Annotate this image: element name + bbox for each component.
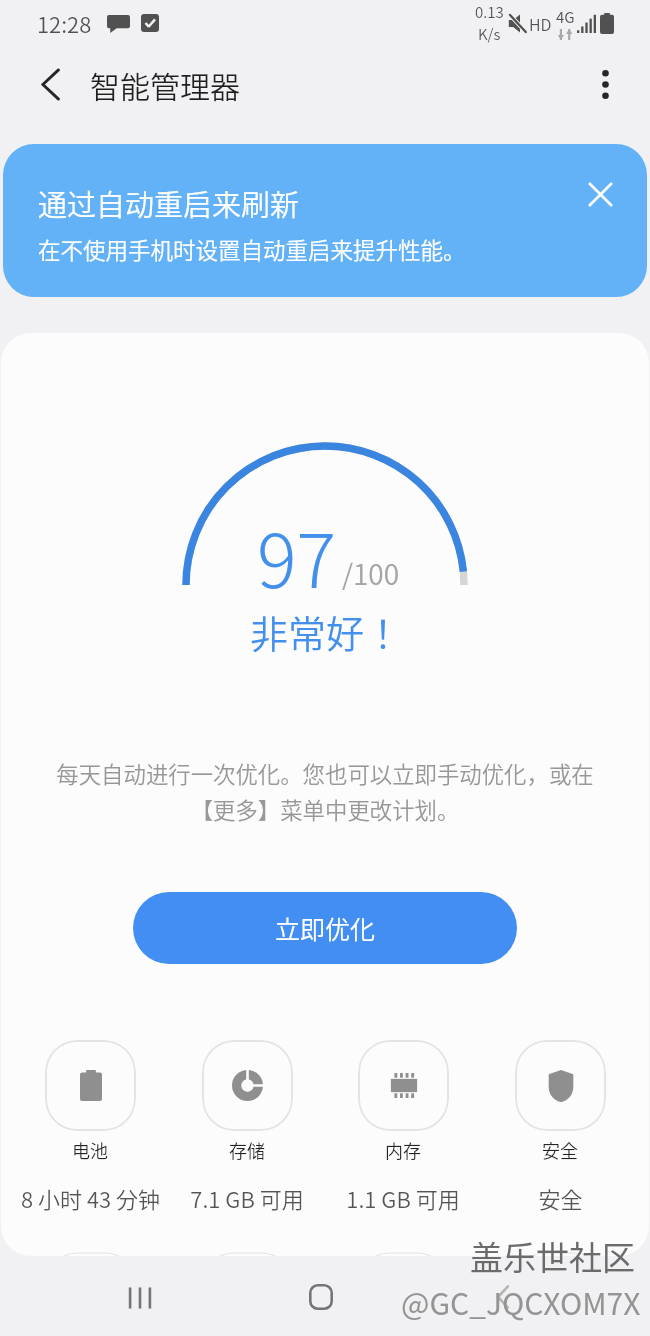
staticText: 4G [556, 6, 575, 28]
staticText: 每天自动进行一次优化。您也可以立即手动优化，或在 【更多】菜单中更改计划。 [41, 757, 609, 825]
staticText: @GC_JQCXOM7X [401, 1280, 641, 1323]
staticText: K/s [478, 23, 501, 45]
staticText: 安全 [538, 1182, 583, 1214]
staticText: /100 [342, 553, 400, 594]
staticText: 8 小时 43 分钟 [21, 1182, 160, 1214]
staticText: 安全 [542, 1137, 578, 1163]
staticText: 1.1 GB 可用 [346, 1182, 460, 1214]
button[interactable]: 立即优化 [133, 892, 517, 964]
staticText: 智能管理器 [90, 63, 240, 106]
button[interactable]: 安全 [482, 1040, 638, 1214]
staticText: 在不使用手机时设置自动重启来提升性能。 [38, 233, 466, 266]
staticText: 内存 [385, 1137, 421, 1163]
staticText: 盖乐世社区 [470, 1232, 635, 1280]
button[interactable]: Back [471, 1265, 535, 1329]
button[interactable]: 内存 [325, 1040, 481, 1214]
button[interactable]: Home [289, 1265, 353, 1329]
button[interactable]: Recents [108, 1266, 172, 1330]
button[interactable]: 存储 [169, 1040, 325, 1214]
button[interactable]: Close [580, 174, 620, 214]
staticText: 电池 [72, 1137, 108, 1163]
staticText: 0.13 [475, 1, 504, 23]
staticText: 非常好！ [250, 604, 403, 659]
staticText: 7.1 GB 可用 [190, 1182, 304, 1214]
staticText: 通过自动重启来刷新 [38, 182, 300, 224]
button[interactable]: Back [24, 58, 76, 110]
staticText: 立即优化 [275, 910, 376, 946]
button[interactable]: More options [579, 58, 631, 110]
button[interactable]: 通过自动重启来刷新 [3, 144, 647, 297]
staticText: 97 [257, 502, 337, 609]
staticText: HD [529, 12, 552, 35]
staticText: 12:28 [37, 7, 92, 39]
staticText: 存储 [229, 1137, 265, 1163]
button[interactable]: 电池 [12, 1040, 168, 1214]
